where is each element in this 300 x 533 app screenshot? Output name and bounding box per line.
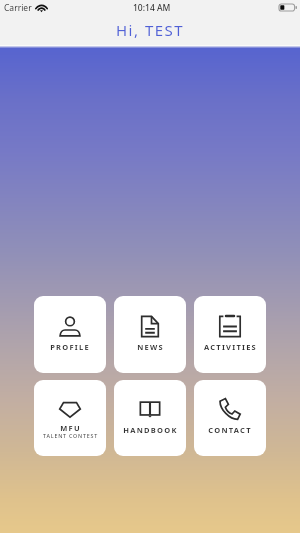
staticText: Carrier (4, 2, 32, 14)
staticText: ACTIVITIES (204, 342, 257, 352)
staticText: CONTACT (208, 425, 252, 435)
staticText: MFU (60, 423, 81, 433)
button[interactable]: Profile (34, 296, 106, 373)
button[interactable]: Contact (194, 380, 266, 456)
button[interactable]: Handbook (114, 380, 186, 456)
button[interactable]: MFU Talent Contest (34, 380, 106, 456)
staticText: Hi, TEST (116, 20, 185, 40)
staticText: NEWS (137, 342, 164, 352)
staticText: 10:14 AM (133, 2, 171, 14)
button[interactable]: News (114, 296, 186, 373)
staticText: HANDBOOK (123, 425, 178, 435)
staticText: TALENT CONTEST (43, 432, 98, 439)
button[interactable]: Activities (194, 296, 266, 373)
staticText: PROFILE (50, 342, 90, 352)
